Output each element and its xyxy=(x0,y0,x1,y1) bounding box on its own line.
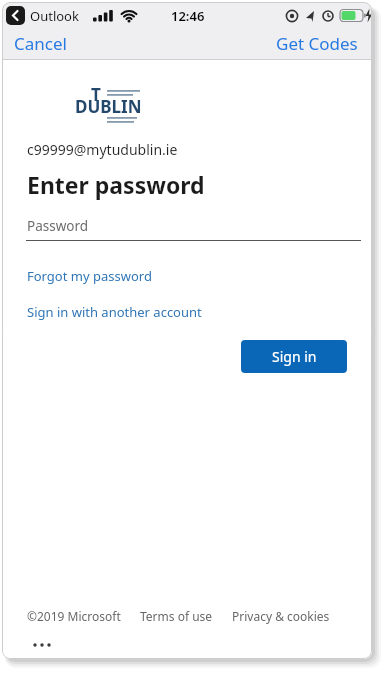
staticText: Privacy & cookies xyxy=(232,608,330,624)
staticText: Terms of use xyxy=(140,608,213,624)
staticText: Sign in with another account xyxy=(27,303,202,321)
staticText: DUBLIN xyxy=(75,95,142,118)
staticText: c99999@mytudublin.ie xyxy=(27,140,178,159)
staticText: Outlook xyxy=(30,7,79,25)
staticText: ©2019 Microsoft xyxy=(27,608,121,624)
staticText: T xyxy=(91,83,101,106)
button[interactable]: T xyxy=(75,82,175,128)
button[interactable] xyxy=(30,634,56,652)
button[interactable]: Terms of use xyxy=(140,608,213,624)
staticText: Cancel xyxy=(14,32,67,55)
button[interactable]: Forgot my password xyxy=(27,267,152,285)
staticText: Sign in xyxy=(272,347,317,366)
button[interactable]: Password xyxy=(26,212,361,241)
button[interactable]: Get Codes xyxy=(270,28,364,59)
staticText: Get Codes xyxy=(276,32,358,55)
button[interactable]: Privacy & cookies xyxy=(232,608,330,624)
button[interactable]: Sign in xyxy=(241,340,347,373)
staticText: Enter password xyxy=(27,169,205,200)
button[interactable]: Cancel xyxy=(8,28,73,59)
staticText: Password xyxy=(27,217,89,235)
staticText: 12:46 xyxy=(171,7,205,25)
button[interactable]: Sign in with another account xyxy=(27,303,202,321)
staticText: Forgot my password xyxy=(27,267,152,285)
